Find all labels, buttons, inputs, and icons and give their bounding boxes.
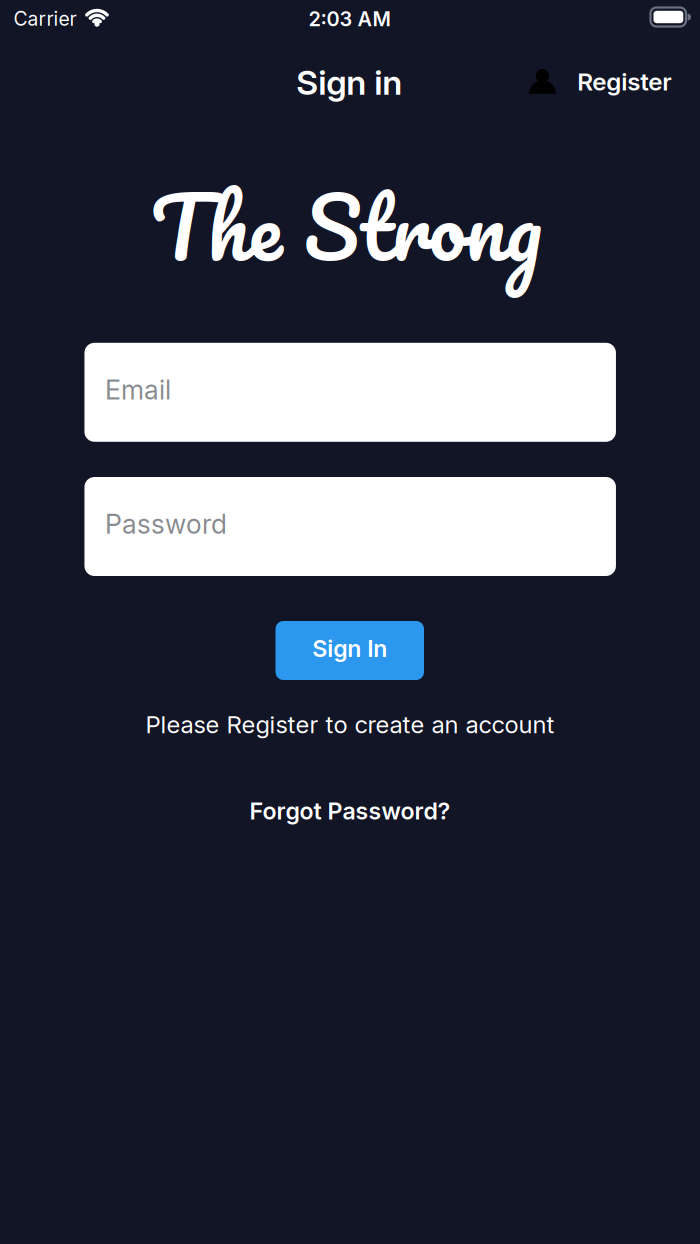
staticText: Forgot Password?: [249, 797, 450, 825]
staticText: Sign in: [296, 62, 402, 103]
staticText: The Strong: [150, 155, 542, 298]
staticText: Sign In: [312, 634, 387, 663]
staticText: Please Register to create an account: [145, 710, 554, 739]
button[interactable]: Email: [84, 343, 616, 442]
staticText: Email: [105, 374, 171, 406]
staticText: 2:03 AM: [308, 7, 390, 31]
staticText: Password: [105, 508, 227, 540]
button[interactable]: Forgot Password?: [249, 797, 450, 825]
staticText: Register: [577, 67, 671, 96]
button[interactable]: Sign In: [275, 621, 424, 680]
button[interactable]: Register: [529, 67, 671, 96]
button[interactable]: Password: [84, 477, 616, 576]
staticText: Carrier: [13, 7, 76, 30]
